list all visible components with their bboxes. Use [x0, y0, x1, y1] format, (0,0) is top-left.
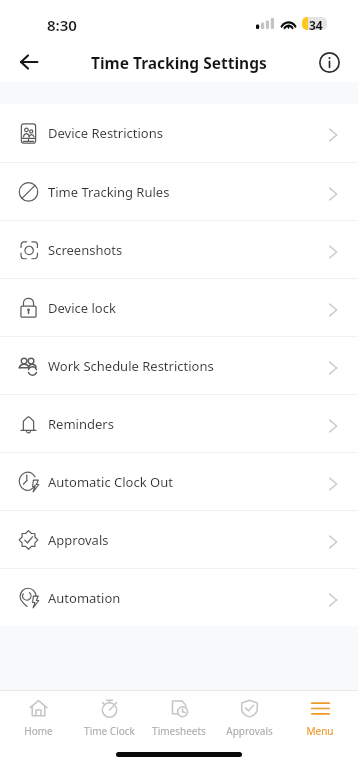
button[interactable]: Home [6, 699, 70, 738]
button[interactable]: Information [310, 43, 348, 81]
staticText: Home [24, 724, 53, 738]
staticText: Approvals [226, 724, 273, 738]
staticText: Timesheets [152, 724, 206, 738]
staticText: Time Tracking Settings [91, 52, 267, 73]
button[interactable]: Time Clock [77, 699, 141, 738]
button[interactable]: Reminders [0, 395, 358, 452]
staticText: Automation [48, 589, 121, 607]
button[interactable]: Back [10, 43, 48, 81]
staticText: Work Schedule Restrictions [48, 357, 214, 375]
button[interactable]: Device Restrictions [0, 104, 358, 162]
staticText: Screenshots [48, 241, 123, 259]
button[interactable]: Automatic Clock Out [0, 453, 358, 510]
staticText: Device Restrictions [48, 124, 163, 142]
button[interactable]: Time Tracking Rules [0, 163, 358, 220]
staticText: Time Tracking Rules [48, 183, 170, 201]
button[interactable]: Menu [288, 699, 352, 738]
staticText: Menu [306, 724, 334, 738]
button[interactable]: Screenshots [0, 221, 358, 278]
button[interactable]: Timesheets [147, 699, 211, 738]
button[interactable]: Device lock [0, 279, 358, 336]
staticText: Device lock [48, 299, 116, 317]
staticText: Time Clock [84, 724, 135, 738]
button[interactable]: Work Schedule Restrictions [0, 337, 358, 394]
staticText: Reminders [48, 415, 114, 433]
button[interactable]: Approvals [0, 511, 358, 568]
staticText: 34 [309, 17, 323, 30]
staticText: 8:30 [47, 15, 77, 35]
staticText: Approvals [48, 531, 109, 549]
button[interactable]: Automation [0, 569, 358, 626]
button[interactable]: Approvals [217, 699, 281, 738]
staticText: Automatic Clock Out [48, 473, 173, 491]
